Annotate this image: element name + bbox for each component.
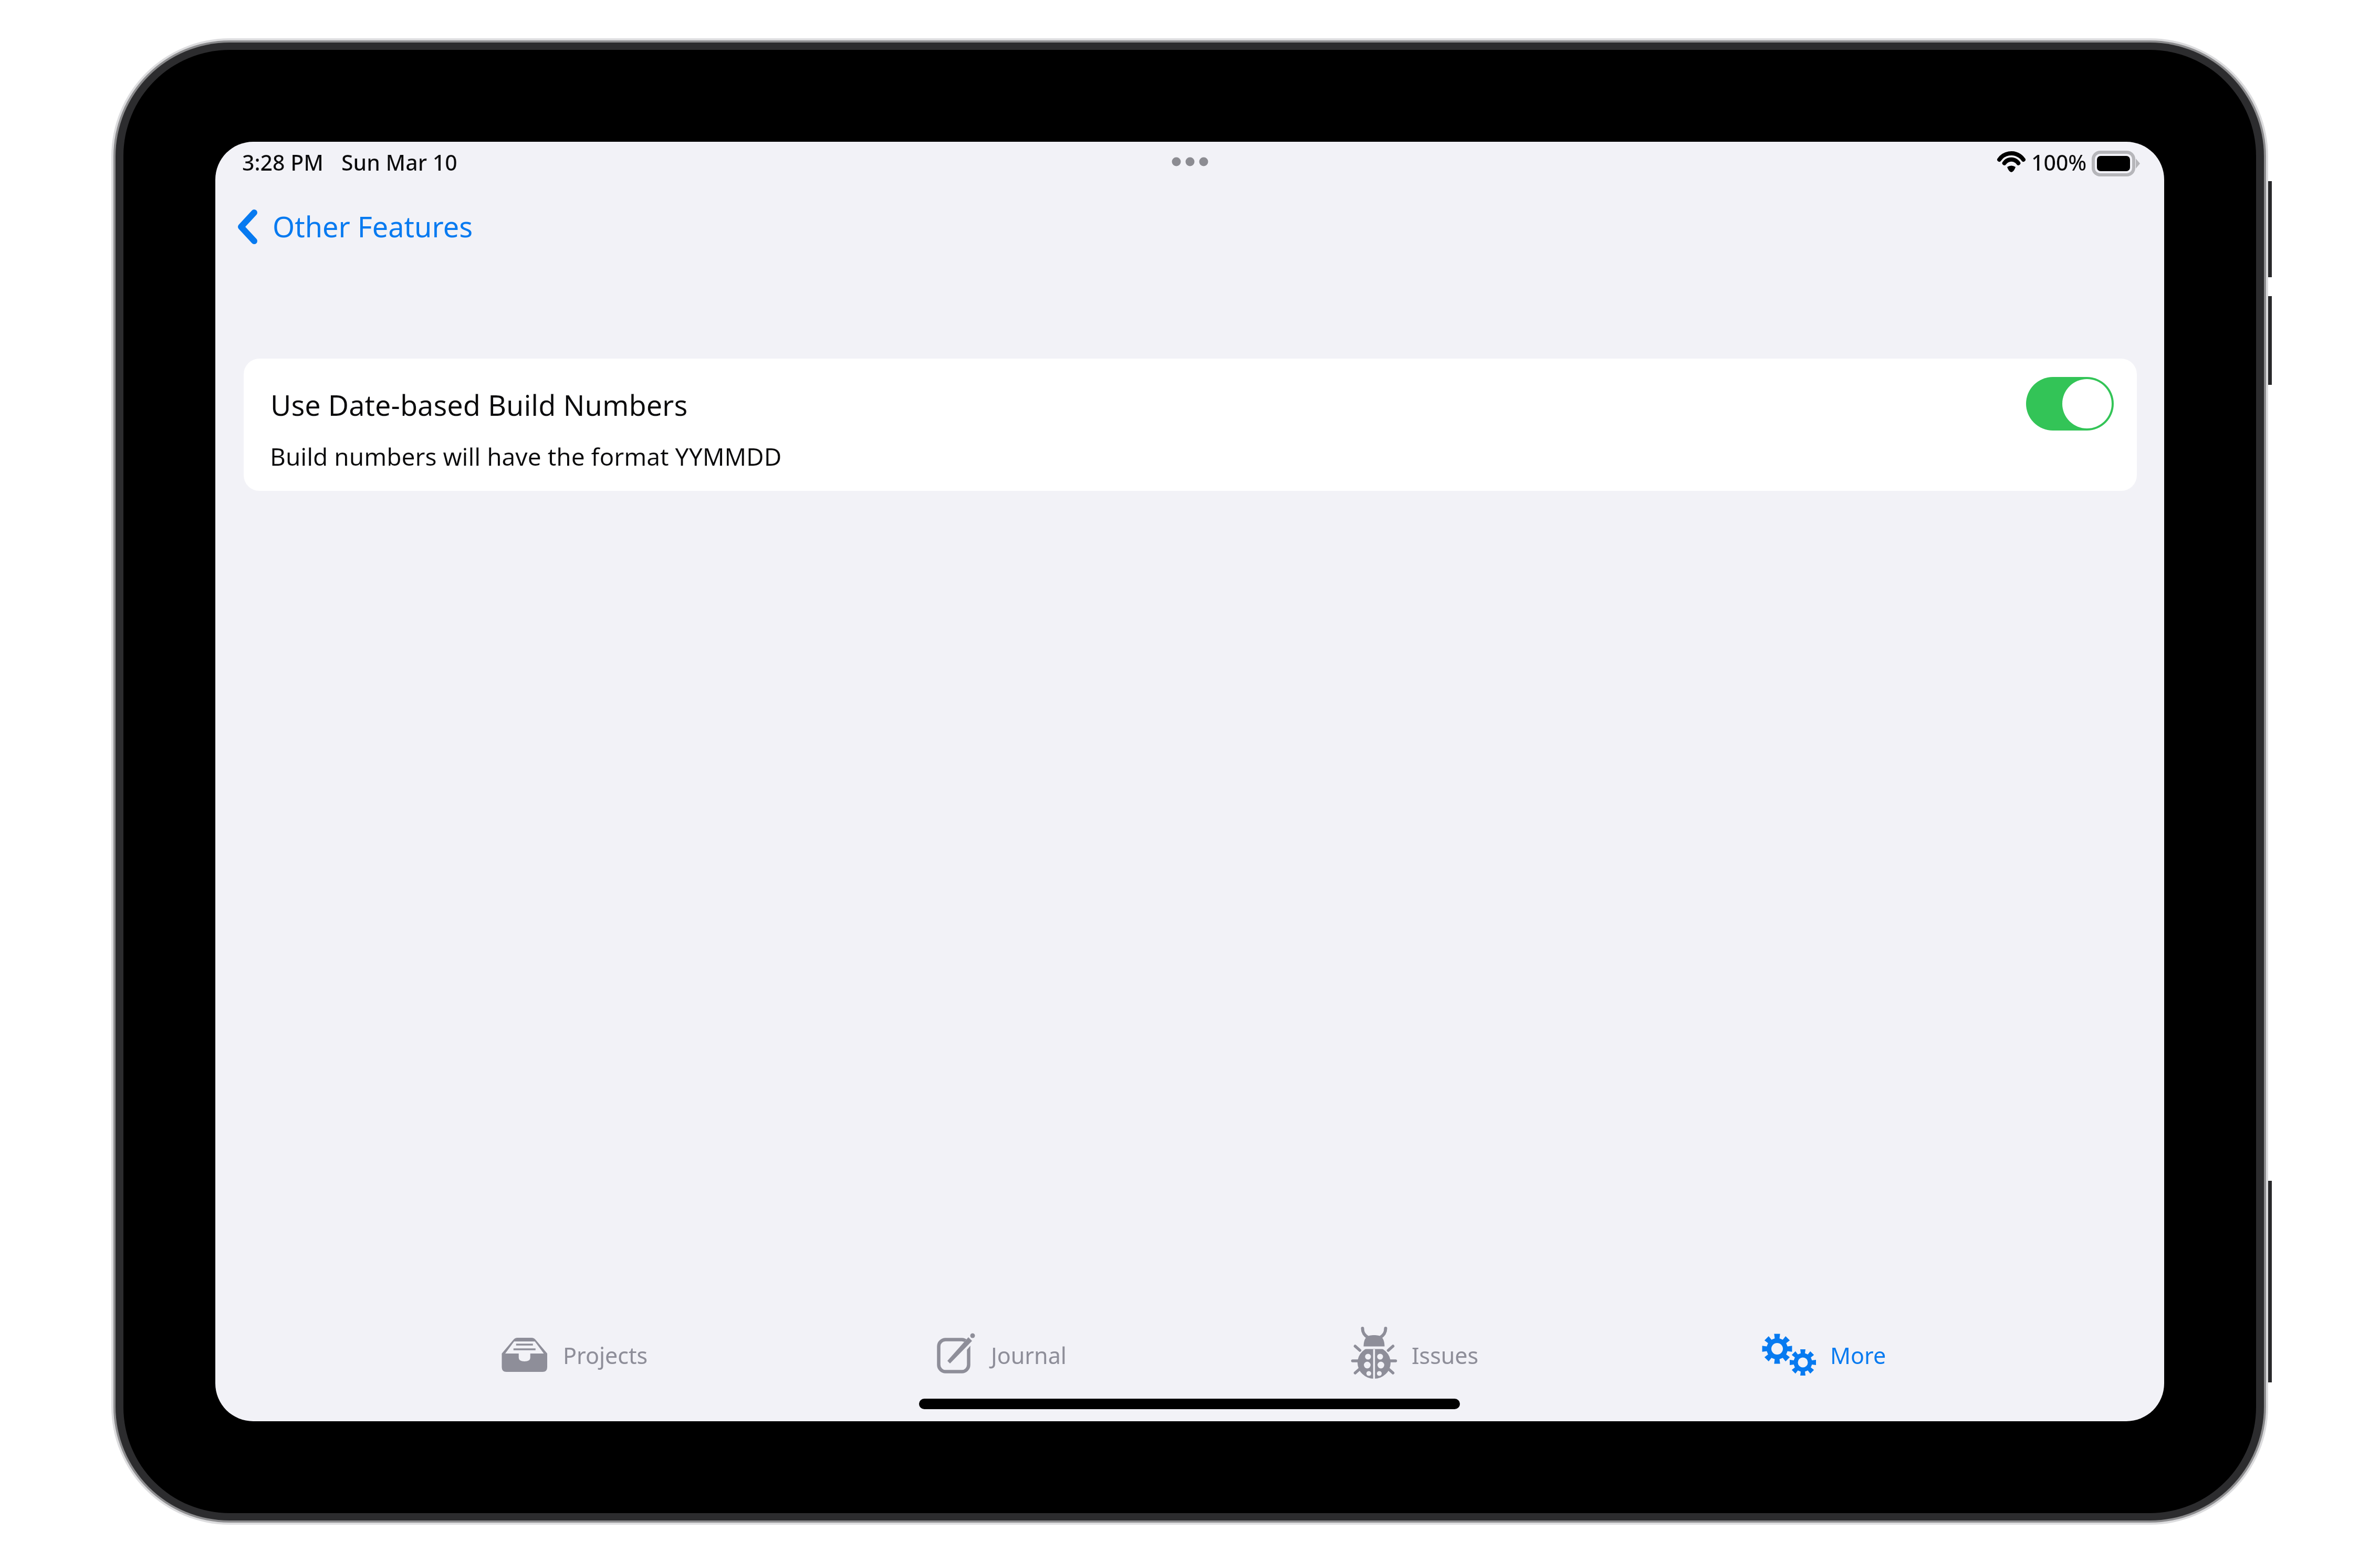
button[interactable]: Projects <box>454 1309 853 1399</box>
button[interactable]: Journal <box>889 1309 1288 1399</box>
staticText: 3:28 PM <box>242 148 323 177</box>
staticText: Sun Mar 10 <box>341 148 457 177</box>
staticText: Projects <box>563 1340 648 1371</box>
staticText: Other Features <box>273 207 473 246</box>
staticText: More <box>1830 1340 1886 1371</box>
button[interactable]: Back to Other Features <box>231 200 483 254</box>
button[interactable]: Use Date-based Build Numbers <box>2026 377 2114 431</box>
staticText: Issues <box>1412 1340 1479 1371</box>
button[interactable]: More <box>1711 1309 2110 1399</box>
staticText: Journal <box>991 1340 1067 1371</box>
staticText: Build numbers will have the format YYMMD… <box>270 440 782 473</box>
staticText: Use Date-based Build Numbers <box>270 385 688 424</box>
button[interactable]: Issues <box>1304 1309 1703 1399</box>
staticText: 100% <box>2031 148 2087 177</box>
button[interactable]: Use Date-based Build Numbers <box>244 359 2137 491</box>
